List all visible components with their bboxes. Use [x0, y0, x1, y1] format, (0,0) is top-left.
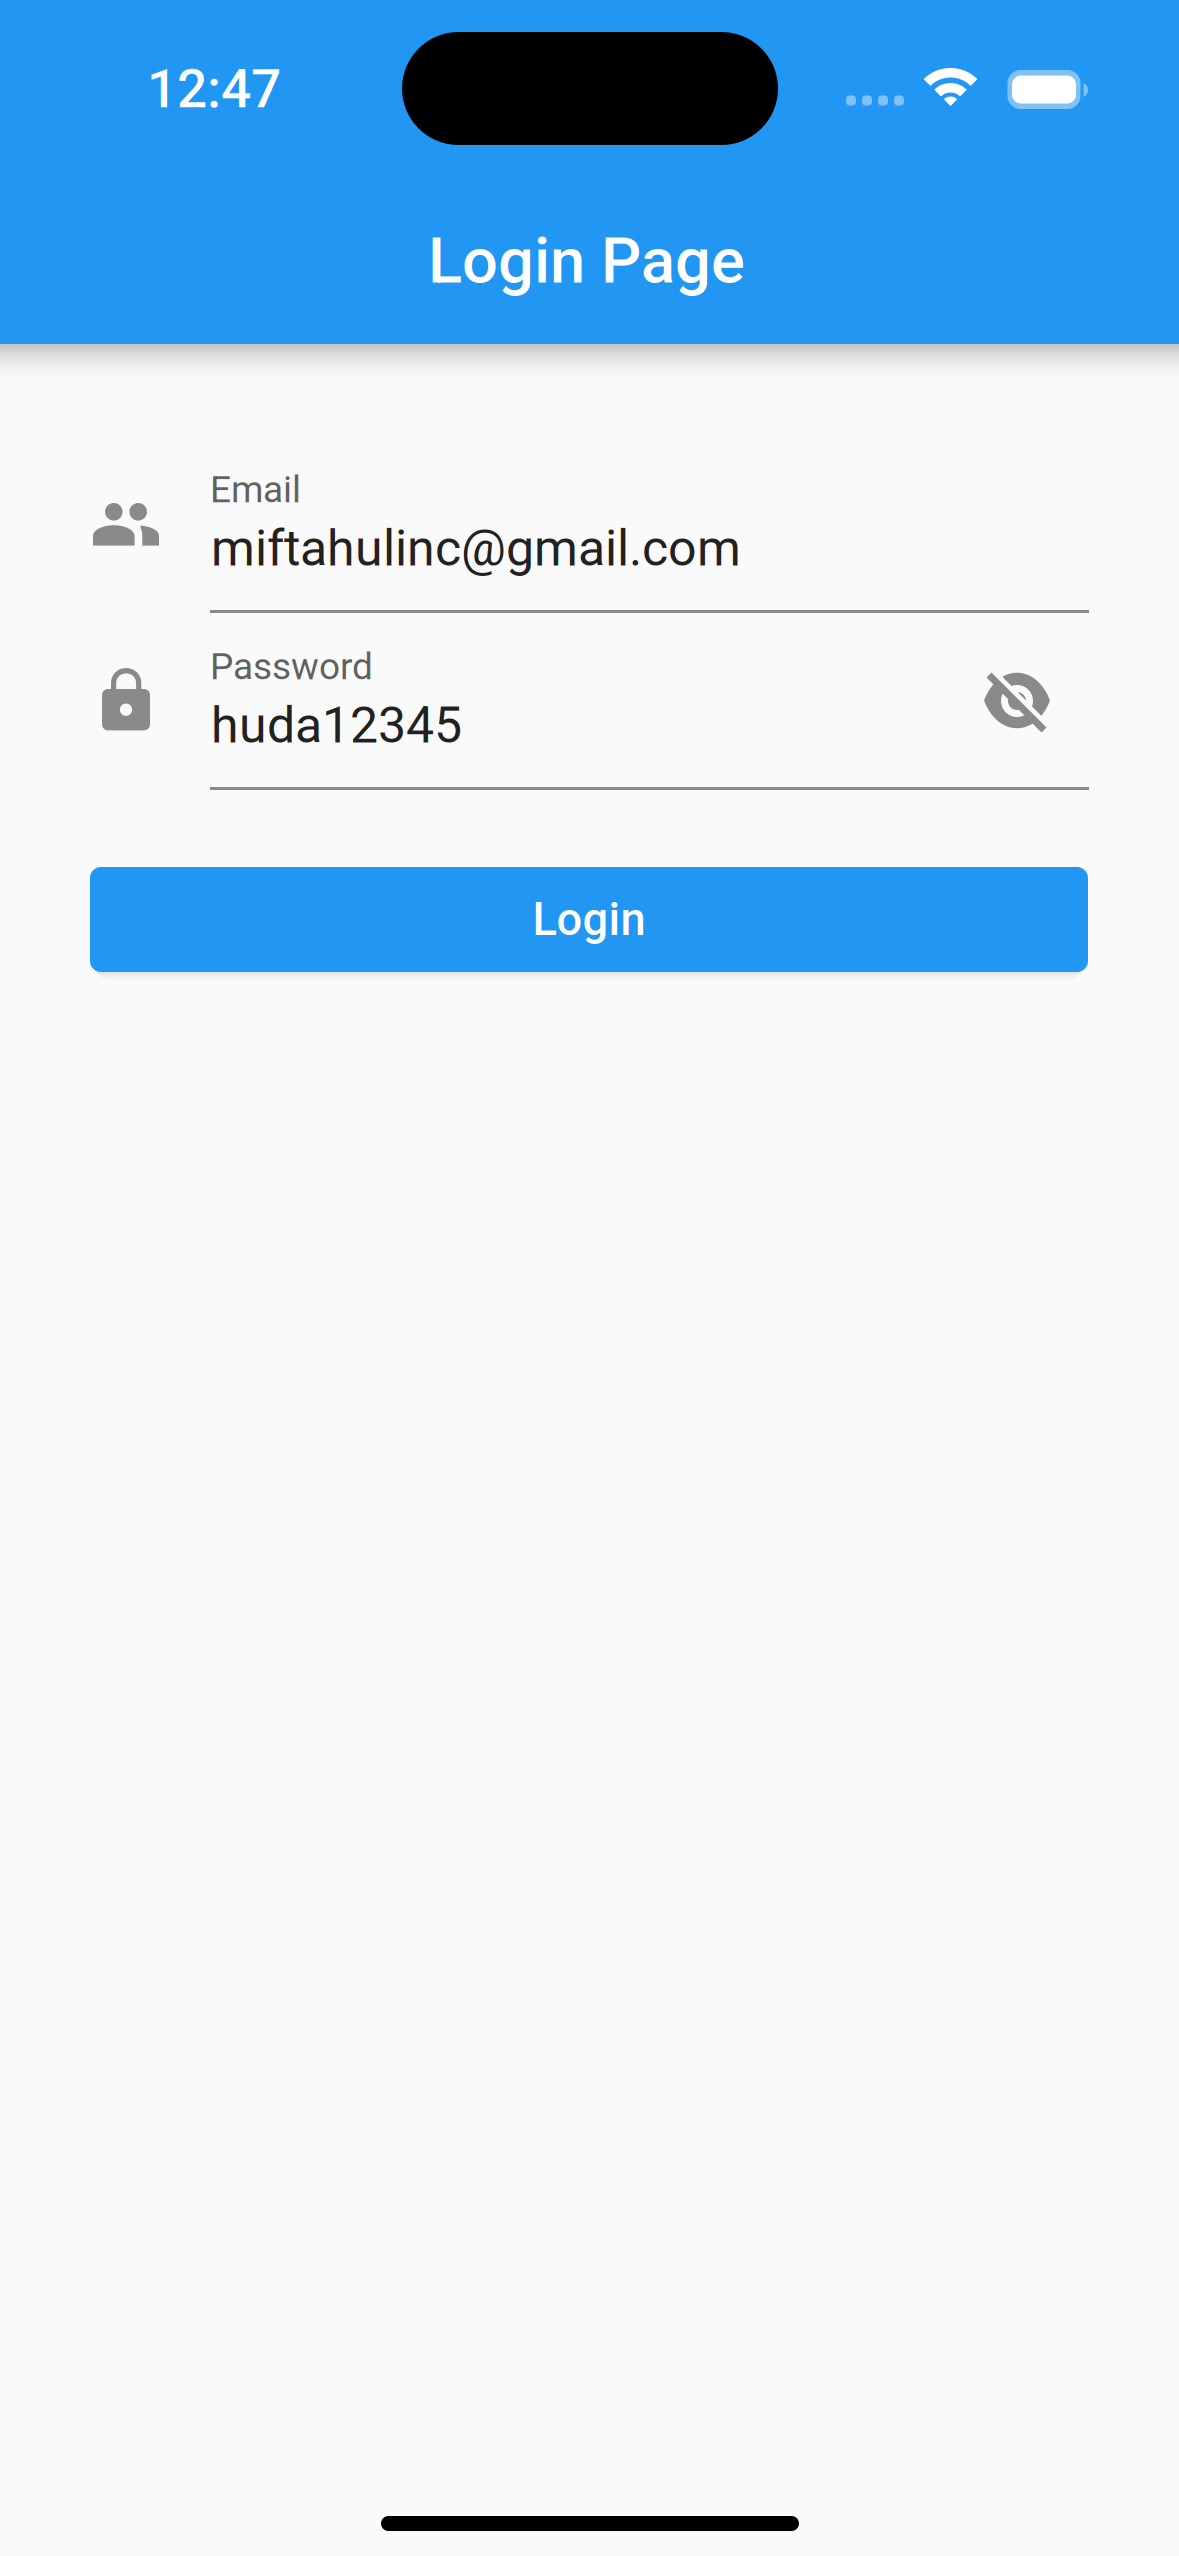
staticText: huda12345: [211, 696, 462, 755]
staticText: Password: [210, 645, 373, 688]
staticText: Login Page: [428, 224, 745, 298]
staticText: Login: [532, 893, 645, 946]
staticText: 12:47: [147, 58, 281, 120]
button[interactable]: Show password: [954, 648, 1080, 752]
button[interactable]: Email: [210, 460, 1089, 621]
staticText: miftahulinc@gmail.com: [211, 519, 741, 578]
button[interactable]: Login: [90, 867, 1088, 972]
button[interactable]: Password: [210, 637, 1089, 798]
staticText: Email: [210, 468, 301, 511]
